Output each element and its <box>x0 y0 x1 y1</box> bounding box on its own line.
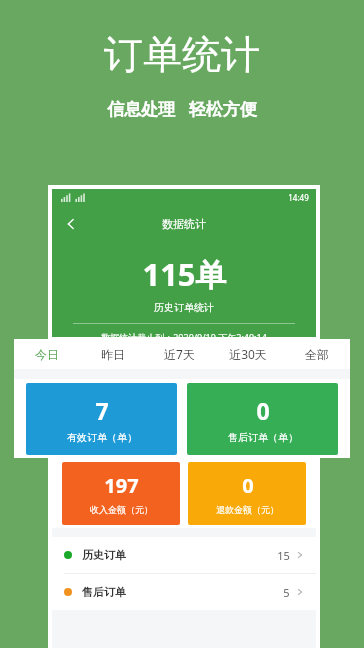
staticText: 197 <box>104 472 139 499</box>
button[interactable]: 昨日 <box>80 339 146 369</box>
staticText: 历史订单统计 <box>154 301 214 314</box>
button[interactable]: 售后订单 <box>52 574 316 610</box>
staticText: 全部 <box>305 347 329 362</box>
button[interactable]: 7 <box>26 383 177 455</box>
button[interactable]: 今日 <box>14 339 80 369</box>
staticText: 15 <box>277 548 290 563</box>
staticText: 14:49 <box>288 192 309 203</box>
staticText: 数据统计 <box>162 217 206 231</box>
staticText: 0 <box>256 395 270 426</box>
staticText: 订单统计 <box>104 30 260 79</box>
staticText: 有效订单（单） <box>67 431 137 444</box>
staticText: 售后订单（单） <box>228 431 298 444</box>
button[interactable]: 近30天 <box>213 339 283 369</box>
staticText: 信息处理 轻松方便 <box>107 97 257 120</box>
staticText: 今日 <box>35 347 59 362</box>
button[interactable]: 历史订单 <box>52 537 316 573</box>
staticText: 历史订单 <box>82 548 126 562</box>
button[interactable]: Back <box>60 213 82 235</box>
staticText: 115单 <box>142 253 227 295</box>
button[interactable]: 全部 <box>283 339 350 369</box>
button[interactable]: 近7天 <box>146 339 213 369</box>
staticText: 5 <box>283 585 290 600</box>
staticText: 数据统计截止到：2020/9/19 下午2:49:14 <box>101 331 267 337</box>
button[interactable]: 197 <box>62 462 180 525</box>
staticText: 近30天 <box>229 346 267 362</box>
button[interactable]: 0 <box>188 462 306 525</box>
staticText: 昨日 <box>101 347 125 362</box>
staticText: 7 <box>95 395 109 426</box>
button[interactable]: 0 <box>187 383 338 455</box>
staticText: 收入金额（元） <box>90 504 153 515</box>
staticText: 售后订单 <box>82 585 126 599</box>
staticText: 0 <box>242 472 254 499</box>
staticText: 退款金额（元） <box>216 504 279 515</box>
staticText: 近7天 <box>164 346 195 362</box>
